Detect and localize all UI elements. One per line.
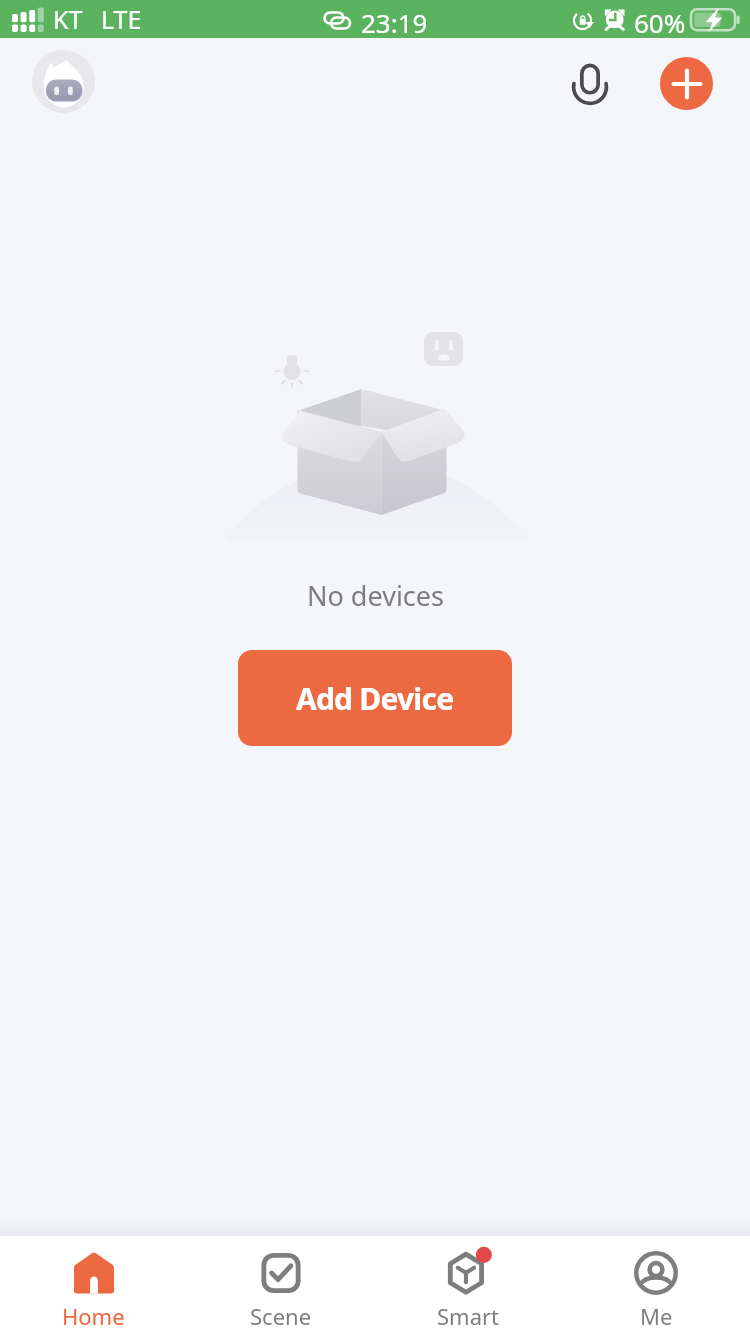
staticText: LTE (101, 2, 142, 36)
button[interactable]: Smart (374, 1236, 562, 1334)
button[interactable]: Home (0, 1236, 187, 1334)
staticText: Smart (437, 1301, 500, 1331)
staticText: No devices (307, 577, 444, 614)
staticText: Add Device (296, 678, 454, 719)
staticText: 60% (634, 5, 686, 40)
staticText: KT (53, 2, 83, 36)
staticText: Scene (250, 1301, 312, 1331)
staticText: Me (640, 1301, 673, 1331)
button[interactable]: Me (562, 1236, 750, 1334)
button[interactable]: Add Device (238, 650, 512, 746)
button[interactable]: Voice assistant (562, 56, 618, 112)
button[interactable]: Profile (32, 50, 95, 113)
staticText: Home (62, 1301, 125, 1331)
button[interactable]: Add device (660, 57, 713, 110)
button[interactable]: Scene (187, 1236, 374, 1334)
staticText: 23:19 (361, 5, 428, 40)
